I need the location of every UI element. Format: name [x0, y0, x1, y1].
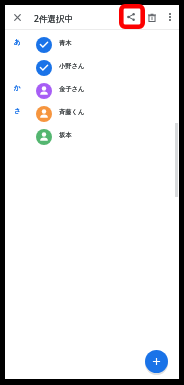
button[interactable]: Share: [120, 6, 142, 28]
button[interactable]: Close: [6, 6, 28, 28]
staticText: 小野さん: [59, 62, 85, 70]
staticText: か: [14, 84, 21, 92]
staticText: か: [14, 84, 21, 92]
staticText: か: [14, 84, 21, 92]
staticText: 小野さん: [59, 62, 85, 70]
staticText: さ: [14, 107, 21, 115]
staticText: 金子さん: [59, 85, 85, 93]
button[interactable]: [5, 57, 179, 80]
button[interactable]: [5, 126, 179, 149]
staticText: 坂本: [59, 131, 72, 139]
staticText: 2件選択中: [34, 13, 74, 25]
staticText: 坂本: [59, 131, 72, 139]
staticText: 斉藤くん: [59, 108, 85, 116]
button[interactable]: [5, 103, 179, 126]
staticText: 斉藤くん: [59, 108, 85, 116]
staticText: 坂本: [59, 131, 72, 139]
staticText: 青木: [59, 39, 72, 47]
staticText: 金子さん: [59, 85, 85, 93]
button[interactable]: [5, 34, 179, 57]
staticText: 斉藤くん: [59, 108, 85, 116]
button[interactable]: Add contact: [145, 350, 168, 373]
staticText: 2件選択中: [34, 13, 74, 25]
button[interactable]: Delete: [141, 7, 163, 29]
button[interactable]: [5, 80, 179, 103]
staticText: 小野さん: [59, 62, 85, 70]
staticText: 2件選択中: [34, 13, 74, 25]
staticText: あ: [14, 38, 21, 46]
staticText: 青木: [59, 39, 72, 47]
staticText: さ: [14, 107, 21, 115]
staticText: あ: [14, 38, 21, 46]
staticText: 青木: [59, 39, 72, 47]
button[interactable]: More options: [160, 7, 180, 27]
staticText: 金子さん: [59, 85, 85, 93]
staticText: あ: [14, 38, 21, 46]
staticText: さ: [14, 107, 21, 115]
